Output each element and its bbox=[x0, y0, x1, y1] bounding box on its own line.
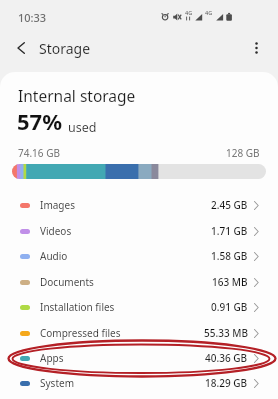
staticText: 4G bbox=[185, 9, 193, 16]
staticText: 1.58 GB bbox=[211, 249, 248, 263]
staticText: Videos bbox=[40, 224, 72, 238]
staticText: 74.16 GB bbox=[18, 146, 60, 160]
staticText: 2.45 GB bbox=[211, 198, 248, 212]
staticText: Storage bbox=[39, 39, 91, 58]
staticText: 55.33 MB bbox=[204, 326, 248, 340]
staticText: 57% bbox=[17, 106, 63, 136]
staticText: 0.91 GB bbox=[211, 300, 248, 314]
staticText: System bbox=[40, 376, 74, 390]
staticText: Audio bbox=[40, 249, 68, 263]
button[interactable]: Videos bbox=[0, 218, 278, 244]
staticText: 163 MB bbox=[212, 275, 248, 289]
staticText: 1.71 GB bbox=[211, 224, 248, 238]
button[interactable]: More options bbox=[243, 35, 269, 61]
staticText: 10:33 bbox=[18, 10, 47, 25]
button[interactable]: System bbox=[0, 370, 278, 396]
button[interactable]: Images bbox=[0, 192, 278, 218]
staticText: used bbox=[68, 119, 97, 136]
button[interactable]: Audio bbox=[0, 243, 278, 269]
button[interactable]: Apps bbox=[0, 345, 278, 371]
staticText: Images bbox=[40, 198, 75, 212]
staticText: Compressed files bbox=[40, 326, 121, 340]
staticText: 40.36 GB bbox=[205, 351, 248, 365]
staticText: 4G bbox=[205, 9, 213, 16]
staticText: 18.29 GB bbox=[205, 376, 248, 390]
staticText: Internal storage bbox=[18, 85, 136, 106]
staticText: Apps bbox=[40, 351, 64, 365]
staticText: Installation files bbox=[40, 300, 115, 314]
button[interactable]: Documents bbox=[0, 269, 278, 295]
staticText: 128 GB bbox=[226, 146, 260, 160]
button[interactable]: Back bbox=[8, 35, 34, 61]
button[interactable]: Installation files bbox=[0, 294, 278, 320]
button[interactable]: Compressed files bbox=[0, 320, 278, 346]
staticText: Documents bbox=[40, 275, 94, 289]
